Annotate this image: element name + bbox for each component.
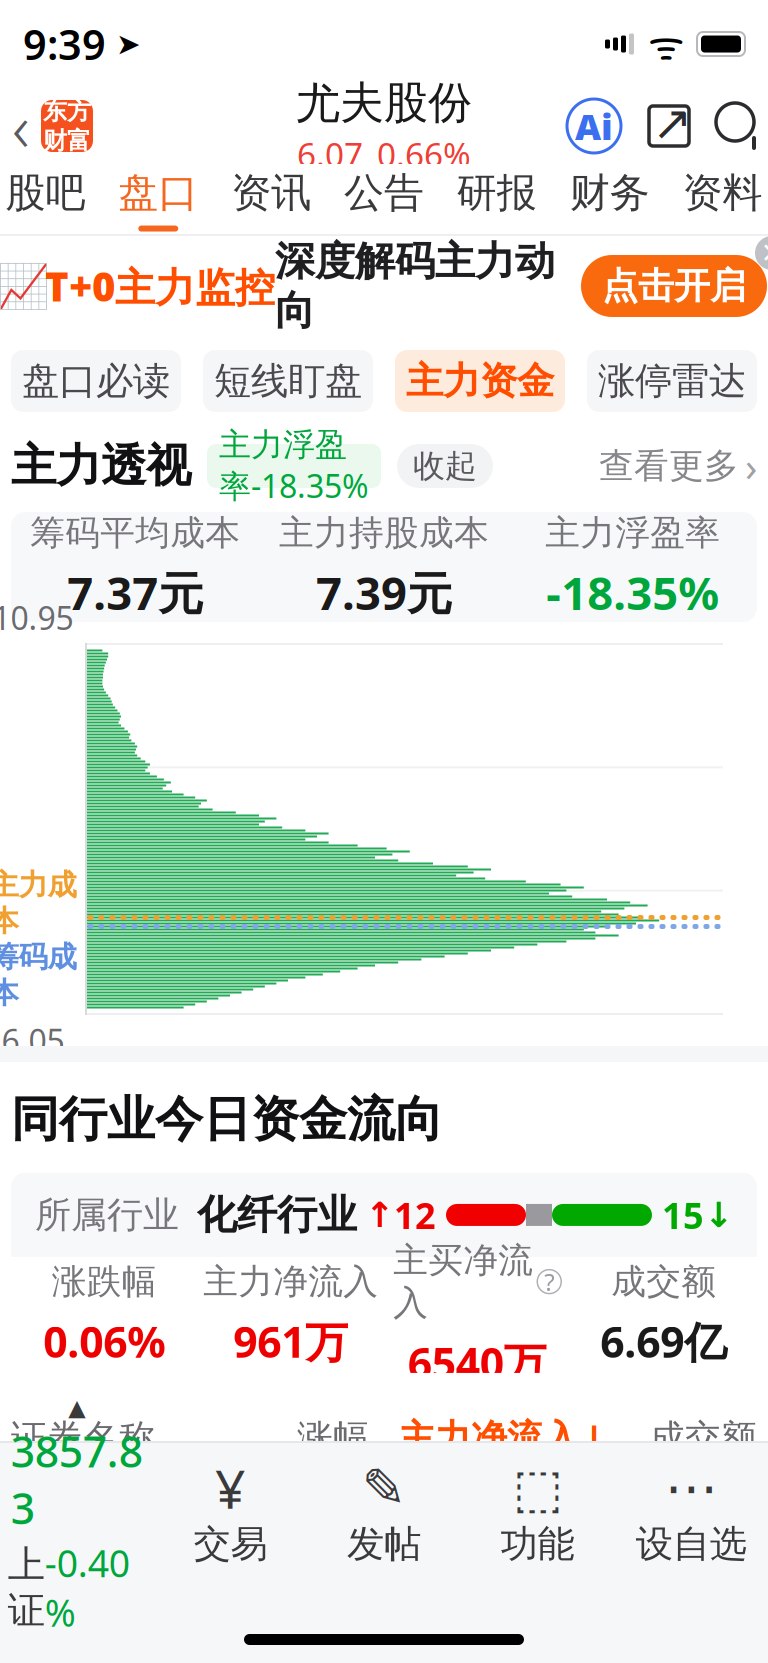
- button[interactable]: 东方财富: [41, 100, 93, 152]
- staticText: 12: [394, 1191, 436, 1239]
- button[interactable]: ⋯: [614, 1465, 768, 1567]
- staticText: ➤: [106, 27, 141, 61]
- staticText: -0.40%: [45, 1538, 130, 1637]
- staticText: 筹码平均成本: [30, 512, 240, 554]
- staticText: ▲: [68, 1395, 85, 1421]
- staticText: 涨幅: [297, 1416, 369, 1460]
- staticText: 7.37元: [67, 562, 203, 622]
- staticText: 15: [662, 1191, 704, 1239]
- staticText: ↗: [652, 96, 692, 150]
- staticText: 短线盯盘: [214, 358, 362, 404]
- button[interactable]: 短线盯盘: [203, 350, 373, 412]
- staticText: ↓: [704, 1195, 733, 1235]
- staticText: -18.35%: [546, 562, 719, 622]
- staticText: 收起: [413, 446, 477, 486]
- staticText: 10.95: [0, 596, 73, 639]
- staticText: 发帖: [347, 1521, 421, 1567]
- staticText: 6.69亿: [600, 1313, 727, 1370]
- staticText: ↑: [365, 1195, 394, 1235]
- staticText: 东方: [43, 96, 91, 126]
- staticText: ‹: [12, 82, 30, 170]
- button[interactable]: 公告: [328, 167, 440, 233]
- button[interactable]: 资料: [666, 167, 768, 233]
- button[interactable]: 分享: [625, 98, 697, 154]
- button[interactable]: 研报: [440, 167, 553, 233]
- staticText: ›: [745, 439, 757, 492]
- staticText: 公告: [344, 168, 424, 217]
- staticText: 股吧: [5, 168, 85, 217]
- staticText: 点击开启: [602, 264, 746, 308]
- button[interactable]: 盘口: [102, 167, 215, 233]
- staticText: 交易: [193, 1521, 267, 1567]
- staticText: 成交额: [649, 1416, 757, 1460]
- staticText: 上证: [8, 1542, 45, 1633]
- staticText: 查看更多: [599, 445, 739, 487]
- staticText: 主力净流入↓: [399, 1416, 609, 1460]
- staticText: 财富: [43, 126, 91, 155]
- staticText: 功能: [501, 1521, 575, 1567]
- staticText: ᯤ: [648, 17, 685, 70]
- button[interactable]: 资讯: [215, 167, 328, 233]
- staticText: 0.06%: [43, 1313, 165, 1370]
- staticText: 化纤行业: [197, 1190, 357, 1239]
- button[interactable]: 查看更多: [599, 444, 757, 488]
- staticText: 9:39: [23, 17, 106, 71]
- staticText: Ai: [575, 102, 613, 150]
- staticText: ✎: [361, 1458, 406, 1518]
- button[interactable]: 涨停雷达: [587, 350, 757, 412]
- staticText: 财务: [570, 168, 650, 217]
- staticText: 设自选: [636, 1521, 747, 1567]
- button[interactable]: 收起: [397, 444, 493, 488]
- staticText: 盘口: [118, 168, 198, 217]
- staticText: ?: [544, 1266, 554, 1298]
- staticText: 主力浮盈率: [545, 512, 720, 554]
- button[interactable]: 盘口必读: [11, 350, 181, 412]
- button[interactable]: 股吧: [0, 167, 102, 233]
- staticText: 3857.83: [11, 1423, 143, 1536]
- staticText: ⋯: [665, 1458, 718, 1518]
- staticText: 证券名称: [11, 1416, 155, 1460]
- staticText: 资讯: [231, 168, 311, 217]
- button[interactable]: 返回: [1, 96, 41, 156]
- staticText: T+0主力监控: [45, 259, 275, 313]
- staticText: 研报: [457, 168, 537, 217]
- button[interactable]: ⬚: [461, 1465, 614, 1567]
- staticText: 涨停雷达: [598, 358, 746, 404]
- button[interactable]: 关闭: [755, 236, 768, 270]
- staticText: 深度解码主力动向: [275, 237, 555, 335]
- staticText: 主买净流入: [393, 1239, 533, 1324]
- staticText: 主力浮盈率-18.35%: [219, 425, 369, 507]
- staticText: 主力净流入: [203, 1260, 378, 1303]
- button[interactable]: 上证指数: [0, 1395, 154, 1637]
- staticText: 主力资金: [406, 358, 554, 404]
- button[interactable]: 主力资金: [395, 350, 565, 412]
- button[interactable]: 点击开启: [581, 255, 767, 317]
- staticText: 📈: [0, 262, 49, 310]
- staticText: 6540万: [408, 1334, 547, 1391]
- staticText: 0.66%: [377, 132, 471, 176]
- staticText: 961万: [233, 1313, 348, 1370]
- staticText: 所属行业: [35, 1193, 179, 1237]
- staticText: 同行业今日资金流向: [11, 1090, 443, 1149]
- staticText: ⬚: [513, 1458, 563, 1518]
- button[interactable]: 财务: [553, 167, 666, 233]
- staticText: 6.05: [1, 1019, 64, 1062]
- staticText: 盘口必读: [22, 358, 170, 404]
- staticText: ✕: [760, 237, 768, 269]
- staticText: 主力成本: [0, 867, 76, 939]
- staticText: 6.07: [297, 132, 363, 176]
- staticText: 7.39元: [316, 562, 452, 622]
- staticText: 成交额: [611, 1260, 716, 1303]
- button[interactable]: ✎: [307, 1465, 461, 1567]
- staticText: ¥: [215, 1453, 246, 1523]
- staticText: 涨跌幅: [52, 1260, 157, 1303]
- staticText: 筹码成本: [0, 939, 76, 1011]
- staticText: 尤夫股份: [296, 76, 472, 130]
- button[interactable]: AI 助手: [563, 95, 625, 157]
- staticText: 主力透视: [11, 438, 191, 494]
- button[interactable]: ¥: [154, 1465, 307, 1567]
- staticText: 主力持股成本: [279, 512, 489, 554]
- staticText: 资料: [683, 168, 763, 217]
- button[interactable]: 搜索: [697, 98, 767, 154]
- button[interactable]: 所属行业: [0, 1173, 768, 1373]
